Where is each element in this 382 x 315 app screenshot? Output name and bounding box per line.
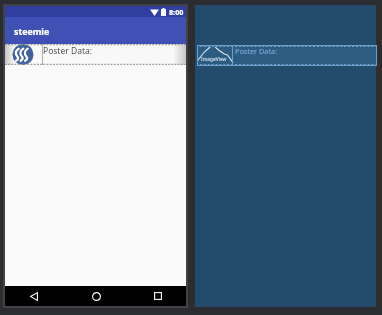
staticText: ImageView	[201, 56, 227, 63]
staticText: 8:00	[169, 7, 184, 17]
staticText: Poster Data:	[43, 45, 93, 57]
button[interactable]: Back	[4, 286, 64, 306]
button[interactable]: Recents	[128, 286, 188, 306]
button[interactable]: Home	[66, 286, 126, 306]
staticText: steemie	[14, 26, 50, 38]
button[interactable]: Poster Data:	[5, 44, 186, 65]
staticText: Poster Data:	[235, 46, 278, 56]
button[interactable]: steemie	[5, 17, 186, 44]
button[interactable]: ImageView	[197, 45, 377, 66]
